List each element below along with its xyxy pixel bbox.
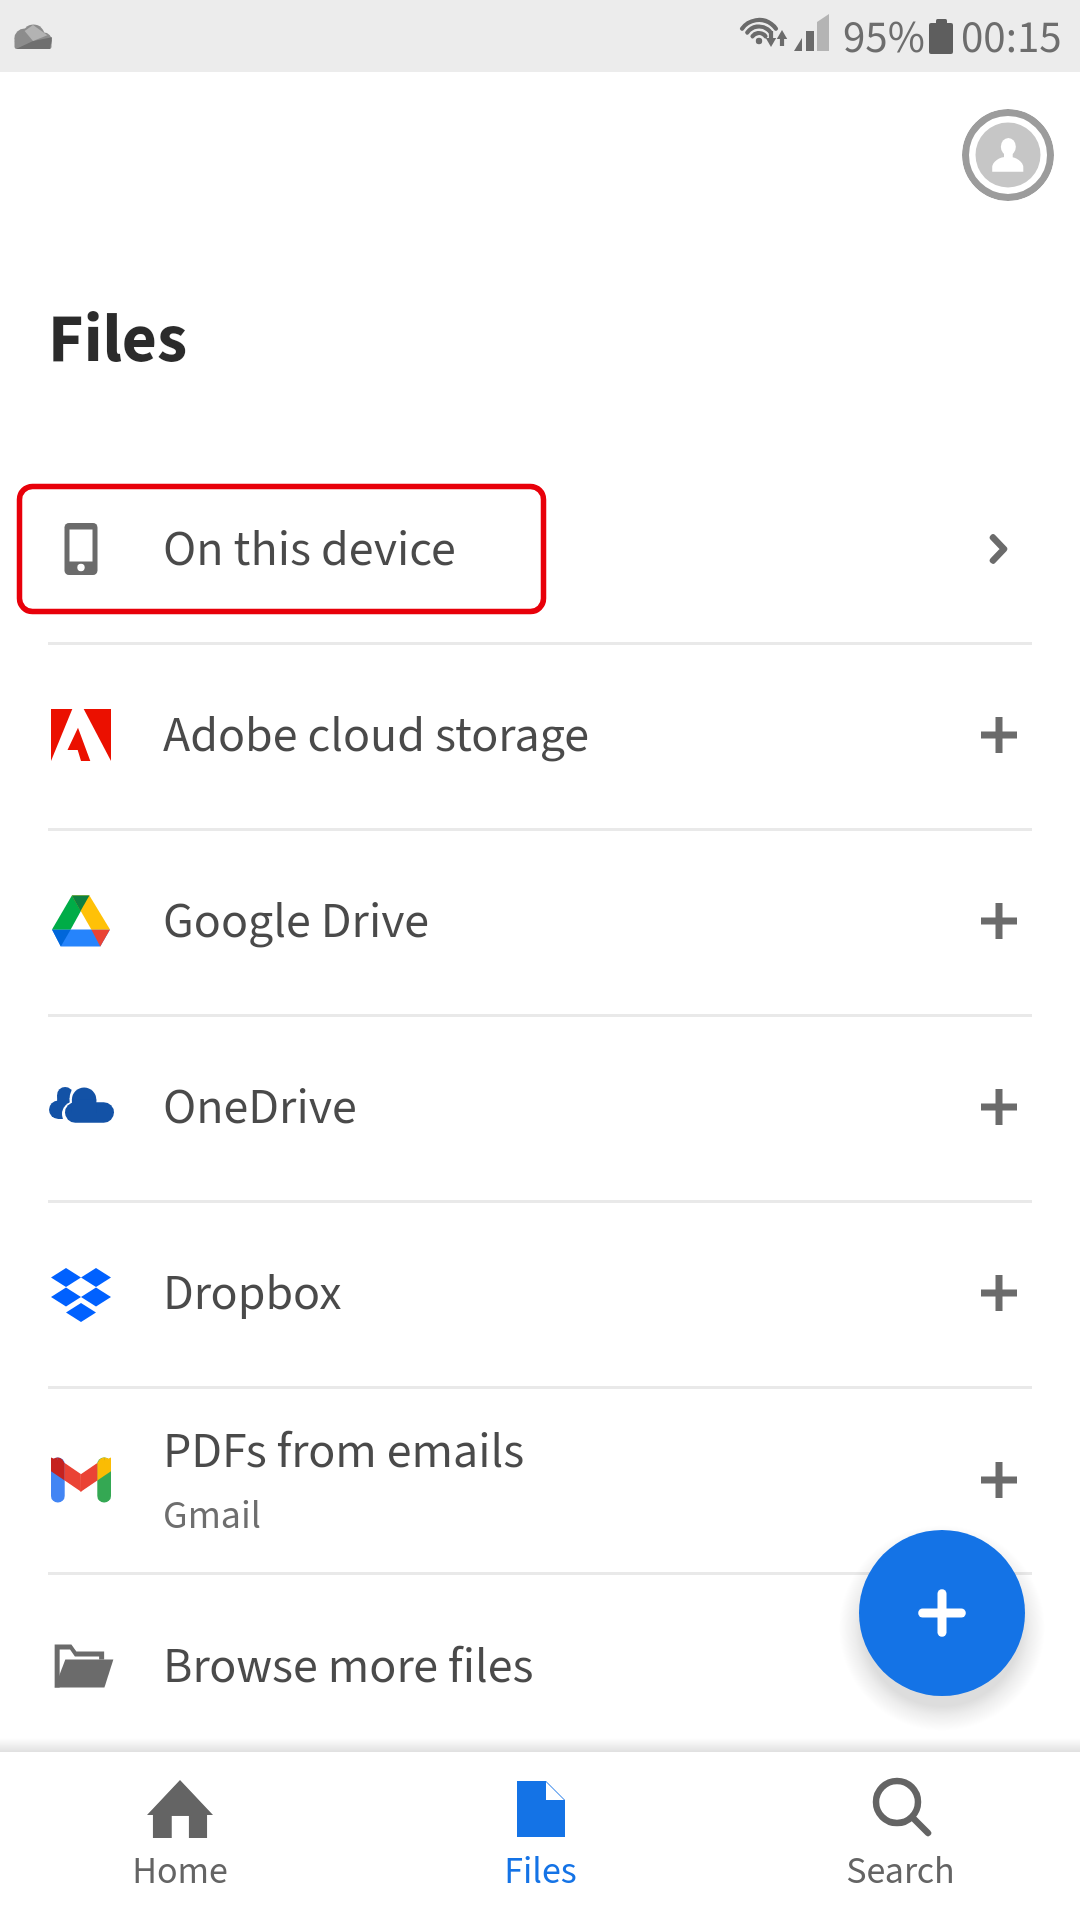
staticText: Home <box>132 1844 228 1898</box>
staticText: Browse more files <box>163 1631 534 1702</box>
button[interactable]: On this device <box>0 456 1080 642</box>
button[interactable]: Add Adobe cloud storage <box>954 690 1044 780</box>
button[interactable]: Files <box>360 1752 720 1920</box>
button[interactable]: Adobe cloud storage <box>0 642 1080 828</box>
staticText: OneDrive <box>163 1072 357 1143</box>
staticText: PDFs from emails <box>163 1416 525 1487</box>
button[interactable]: Add OneDrive <box>954 1062 1044 1152</box>
button[interactable]: Add Google Drive <box>954 876 1044 966</box>
staticText: Files <box>504 1844 577 1898</box>
staticText: 95% <box>843 6 925 70</box>
button[interactable]: Dropbox <box>0 1200 1080 1386</box>
button[interactable]: Google Drive <box>0 828 1080 1014</box>
staticText: Search <box>846 1844 955 1898</box>
staticText: 00:15 <box>961 6 1062 70</box>
staticText: On this device <box>163 514 456 585</box>
button[interactable]: Search <box>720 1752 1080 1920</box>
button[interactable]: PDFs from emails <box>0 1387 1080 1573</box>
staticText: Files <box>48 291 188 388</box>
staticText: Adobe cloud storage <box>163 700 589 771</box>
button[interactable]: Add PDFs from emails <box>954 1435 1044 1525</box>
button[interactable]: Add Dropbox <box>954 1248 1044 1338</box>
button[interactable]: OneDrive <box>0 1014 1080 1200</box>
staticText: Dropbox <box>163 1258 342 1329</box>
button[interactable]: Browse more files <box>0 1573 1080 1759</box>
button[interactable]: Create new file <box>859 1530 1025 1696</box>
button[interactable]: Account <box>962 109 1054 201</box>
staticText: Gmail <box>163 1487 262 1544</box>
button[interactable]: Home <box>0 1752 360 1920</box>
button[interactable]: Open On this device <box>957 504 1047 594</box>
staticText: Google Drive <box>163 886 430 957</box>
